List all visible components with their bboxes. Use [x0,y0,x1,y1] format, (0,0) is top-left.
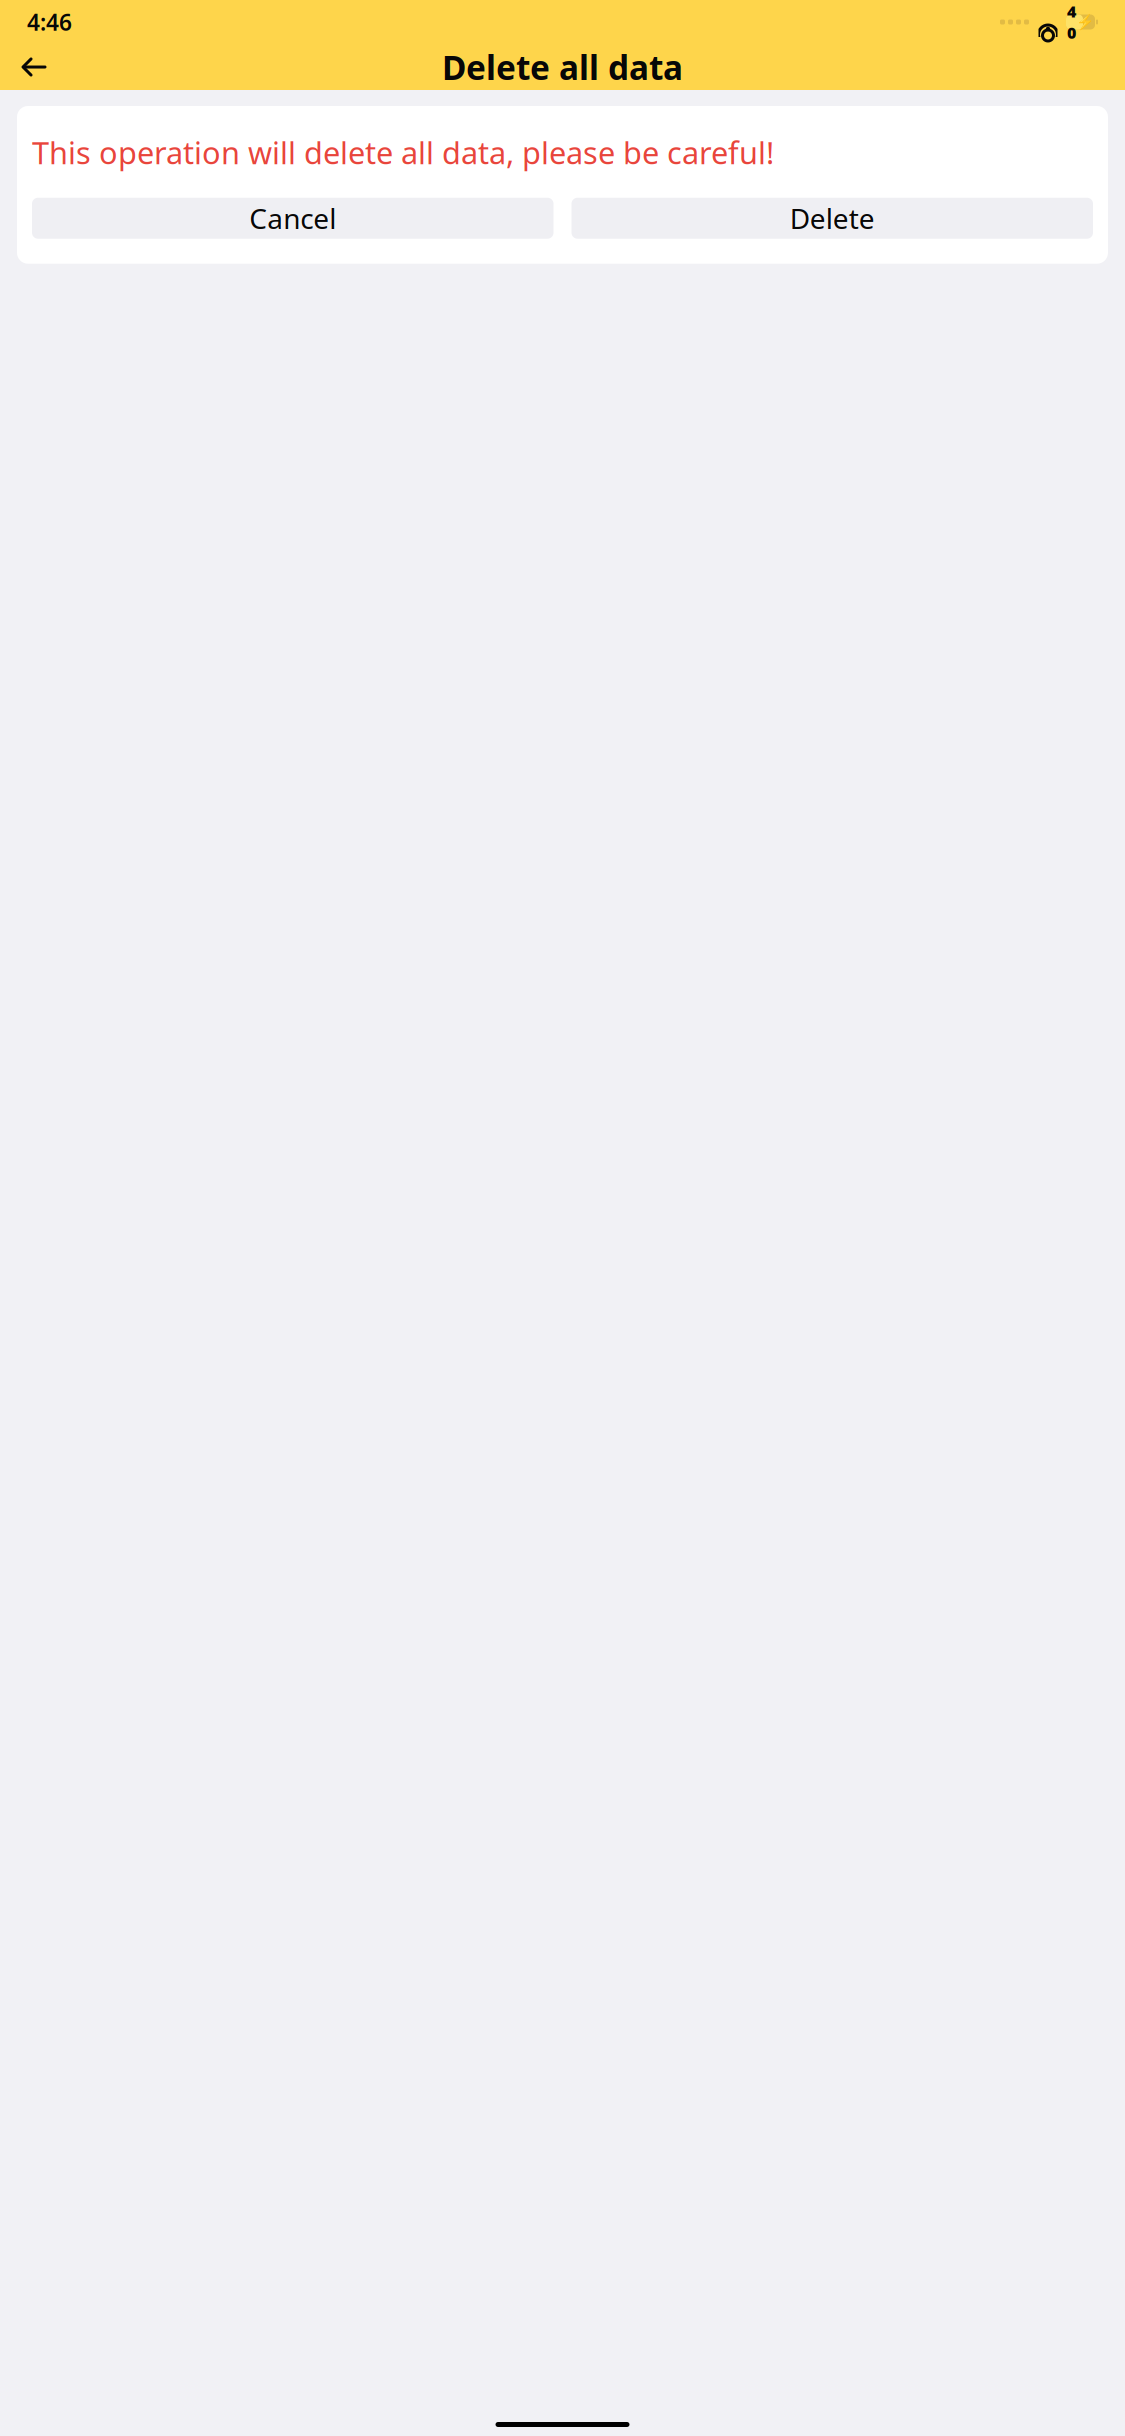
button[interactable]: Back [11,44,57,90]
button[interactable]: Delete [571,198,1093,239]
staticText: ⚡ [1076,14,1094,30]
button[interactable]: Cancel [32,198,553,239]
staticText: Cancel [249,200,336,237]
staticText: Delete all data [442,45,683,89]
staticText: This operation will delete all data, ple… [32,132,774,173]
staticText: 4:46 [27,7,72,37]
staticText: Delete [790,200,875,237]
staticText: 40 [1067,1,1076,43]
